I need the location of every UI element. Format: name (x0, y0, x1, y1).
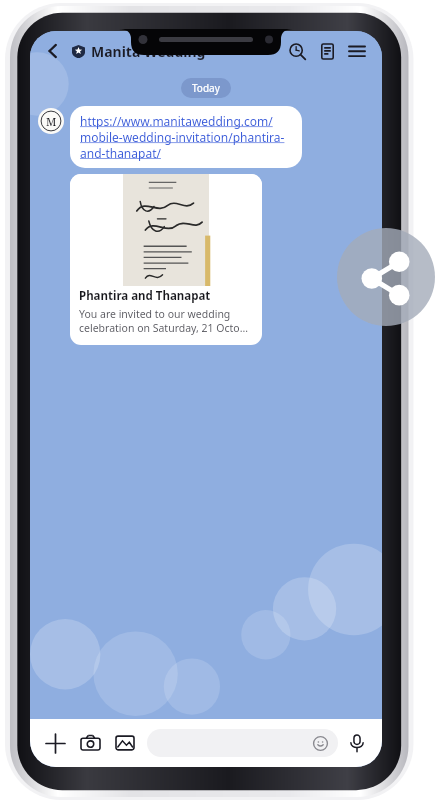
button[interactable] (147, 729, 338, 757)
button[interactable]: Phantira and Thanapat (70, 174, 262, 345)
button[interactable]: Menu (342, 36, 372, 66)
button[interactable]: Camera (75, 728, 105, 758)
staticText: Manita Wedding (91, 42, 206, 61)
button[interactable]: https://www.manitawedding.com/mobile-wed… (70, 106, 302, 168)
staticText: You are invited to our wedding celebrati… (79, 307, 253, 335)
button[interactable]: Add (40, 728, 70, 758)
button[interactable]: Share (337, 228, 435, 326)
button[interactable]: Manita Wedding profile (38, 108, 64, 134)
button[interactable]: Search history (282, 36, 312, 66)
button[interactable]: Back (40, 38, 66, 64)
button[interactable]: Gallery (110, 728, 140, 758)
staticText: Today (192, 81, 220, 95)
staticText: https://www.manitawedding.com/mobile-wed… (80, 113, 292, 161)
button[interactable]: Notes (312, 36, 342, 66)
staticText: Phantira and Thanapat (79, 288, 211, 304)
staticText: M (46, 114, 57, 129)
button[interactable]: Voice message (342, 728, 372, 758)
